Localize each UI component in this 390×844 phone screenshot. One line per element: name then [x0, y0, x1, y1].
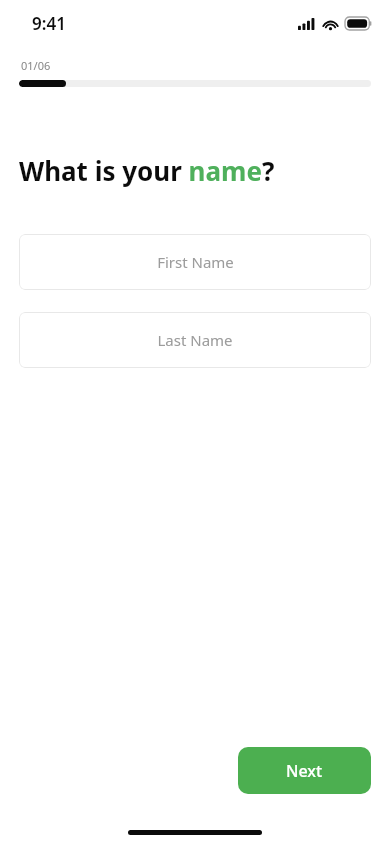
staticText: Last Name	[157, 330, 233, 350]
button[interactable]: Last Name	[19, 312, 371, 368]
staticText: Next	[286, 760, 323, 782]
staticText: 9:41	[32, 12, 66, 35]
staticText: First Name	[157, 252, 234, 272]
staticText: What is your name?	[19, 153, 275, 188]
button[interactable]: First Name	[19, 234, 371, 290]
staticText: 01/06	[21, 58, 51, 73]
button[interactable]: Next	[238, 747, 371, 794]
